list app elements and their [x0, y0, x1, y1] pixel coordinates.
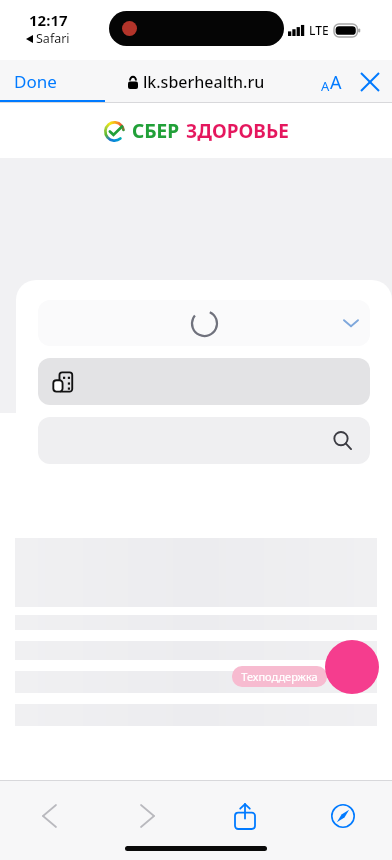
- button[interactable]: Forward: [98, 794, 196, 838]
- staticText: A: [330, 70, 342, 95]
- staticText: LTE: [309, 22, 329, 38]
- staticText: ЗДОРОВЬЕ: [186, 118, 289, 144]
- staticText: lk.sberhealth.ru: [143, 71, 265, 93]
- staticText: Done: [14, 70, 57, 93]
- button[interactable]: Clinic: [38, 358, 370, 405]
- button[interactable]: Select city: [38, 300, 370, 346]
- button[interactable]: Search: [38, 417, 370, 464]
- staticText: Safari: [36, 30, 70, 47]
- button[interactable]: Text size: [315, 64, 348, 101]
- button[interactable]: Close: [348, 63, 392, 101]
- button[interactable]: lk.sberhealth.ru: [124, 67, 269, 97]
- button[interactable]: Support chat: [325, 640, 379, 694]
- button[interactable]: Done: [0, 64, 71, 99]
- button[interactable]: Back: [0, 794, 98, 838]
- button[interactable]: Open in Safari: [294, 794, 392, 838]
- staticText: 12:17: [29, 10, 68, 30]
- staticText: A: [321, 77, 330, 95]
- button[interactable]: Share: [196, 794, 294, 838]
- staticText: СБЕР: [132, 118, 180, 144]
- staticText: Техподдержка: [241, 669, 318, 684]
- button[interactable]: Техподдержка: [232, 666, 327, 687]
